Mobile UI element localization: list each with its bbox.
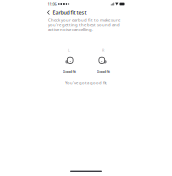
staticText: Check your earbud fit to make sure you'r… xyxy=(48,17,120,32)
staticText: Good fit xyxy=(62,69,75,74)
staticText: Good fit xyxy=(96,69,109,74)
staticText: Earbud fit test xyxy=(52,9,86,16)
staticText: L xyxy=(68,48,70,53)
staticText: 11:06 xyxy=(47,1,56,7)
staticText: You've got a good fit. xyxy=(65,80,107,85)
button[interactable]: Back xyxy=(45,8,51,16)
staticText: R xyxy=(102,48,104,53)
